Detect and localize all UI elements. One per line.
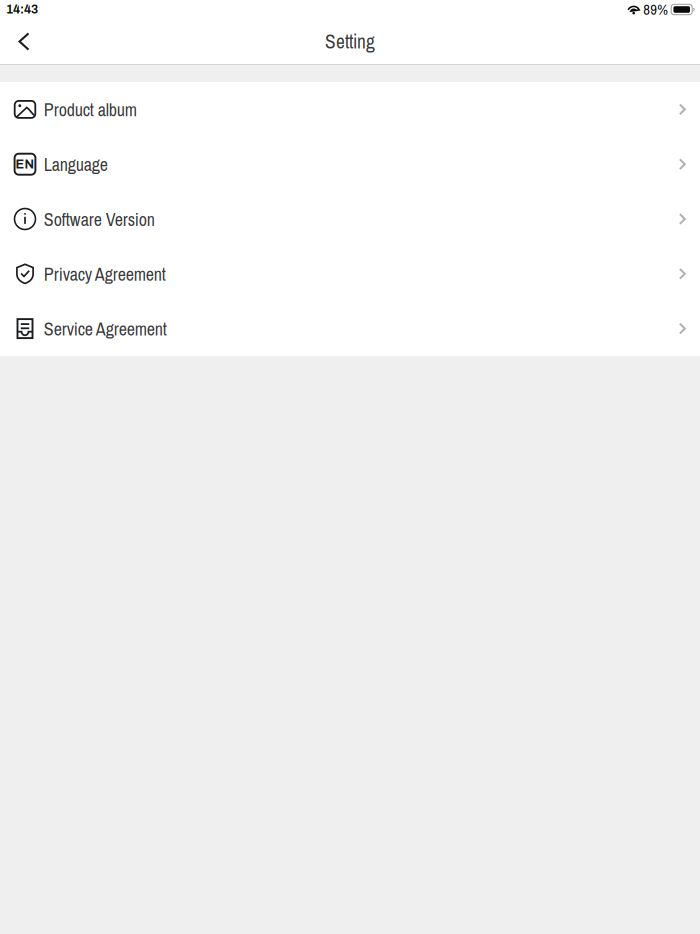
staticText: EN — [15, 157, 34, 171]
staticText: 89% — [643, 0, 668, 19]
staticText: 14:43 — [6, 3, 38, 16]
staticText: Setting — [325, 28, 375, 54]
staticText: Service Agreement — [44, 317, 167, 341]
staticText: Software Version — [44, 207, 155, 231]
button[interactable]: Service Agreement — [0, 301, 700, 356]
button[interactable]: Back — [0, 19, 48, 64]
staticText: Privacy Agreement — [44, 262, 166, 286]
staticText: Product album — [44, 98, 137, 122]
button[interactable]: Product album — [0, 82, 700, 137]
button[interactable]: EN — [0, 137, 700, 192]
button[interactable]: Software Version — [0, 192, 700, 246]
staticText: Language — [44, 152, 108, 177]
button[interactable]: Privacy Agreement — [0, 246, 700, 301]
